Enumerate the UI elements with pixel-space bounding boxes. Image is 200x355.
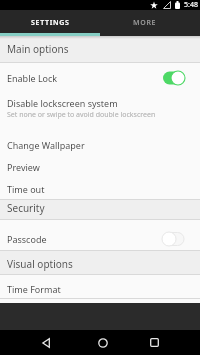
button[interactable]: Time Format [0,275,200,298]
button[interactable] [33,330,58,355]
staticText: Time Format [7,283,61,295]
staticText: Main options [7,42,69,56]
staticText: Enable Lock [7,72,163,84]
staticText: MORE [133,18,157,28]
button[interactable] [163,231,186,248]
button[interactable]: Disable lockscreen system [0,93,200,130]
staticText: SETTINGS [31,18,70,28]
staticText: Preview [7,161,40,173]
staticText: Set none or swipe to avoid double locksc… [7,110,156,120]
button[interactable]: Passcode [0,220,200,250]
staticText: Security [7,201,45,215]
button[interactable]: Time out [0,179,200,199]
button[interactable] [163,70,186,87]
staticText: Time out [7,183,45,195]
button[interactable]: Preview [0,158,200,179]
staticText: Visual options [7,257,73,271]
staticText: 5:48 [184,0,198,10]
button[interactable]: Enable Lock [0,63,200,93]
staticText: Change Wallpaper [7,139,85,151]
button[interactable] [90,330,115,355]
button[interactable]: SETTINGS [0,10,100,33]
button[interactable] [142,330,167,355]
staticText: Passcode [7,233,163,245]
button[interactable]: MORE [100,10,190,33]
button[interactable]: Change Wallpaper [0,130,200,158]
staticText: Disable lockscreen system [7,97,118,109]
